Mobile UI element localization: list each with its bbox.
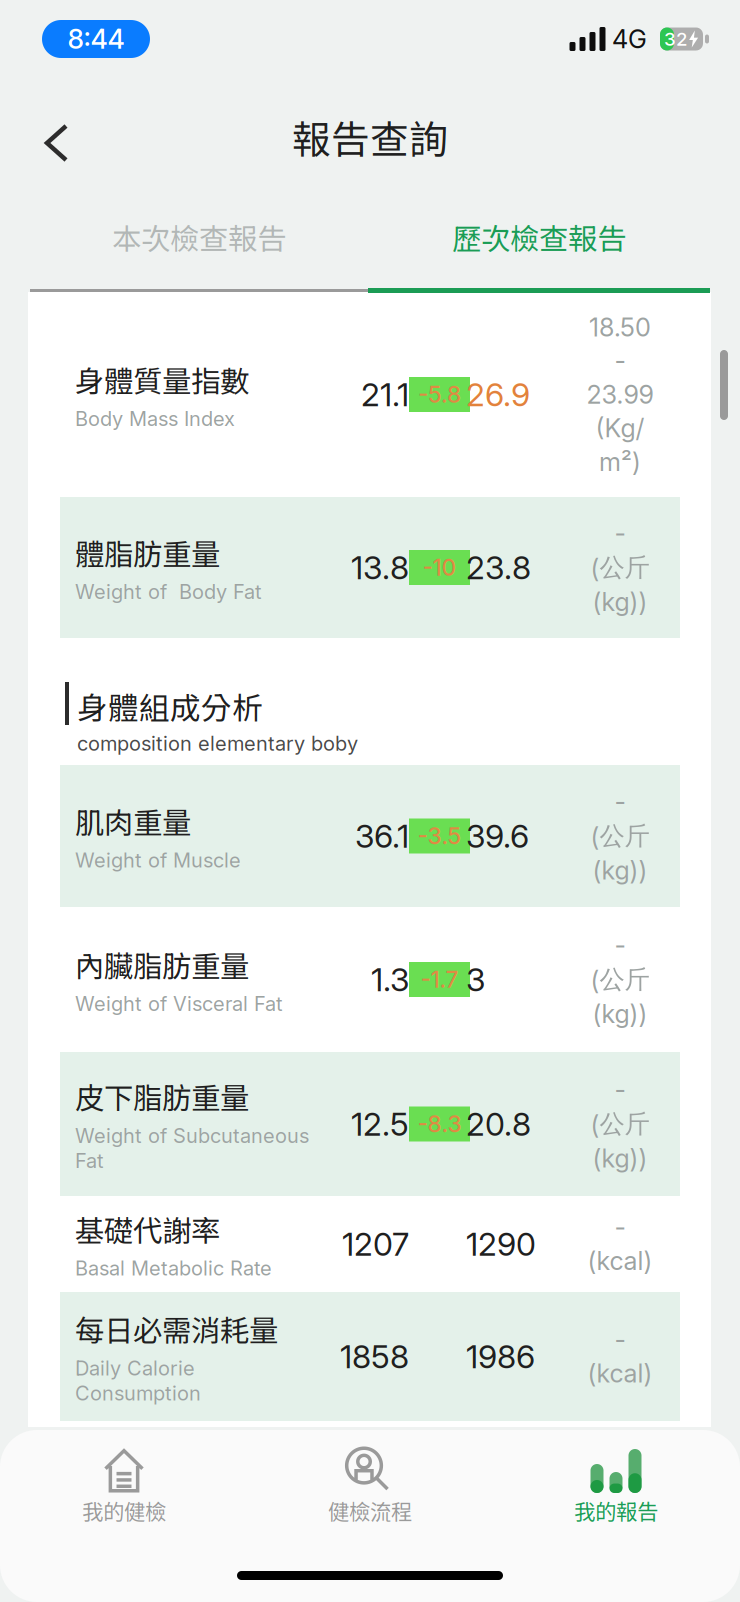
staticText: 1986 bbox=[466, 1337, 535, 1376]
button[interactable]: 歷次檢查報告 bbox=[368, 196, 710, 278]
staticText: Weight of Subcutaneous bbox=[75, 1123, 309, 1148]
staticText: (公斤 bbox=[590, 820, 649, 852]
staticText: 1207 bbox=[342, 1225, 409, 1263]
staticText: 36.1 bbox=[355, 817, 409, 855]
staticText: Weight of Muscle bbox=[75, 848, 241, 872]
button[interactable]: 我的報告 bbox=[493, 1448, 739, 1526]
staticText: 1.3 bbox=[371, 960, 409, 999]
staticText: (kg)) bbox=[592, 855, 647, 886]
button[interactable]: Back bbox=[0, 92, 96, 182]
staticText: 本次檢查報告 bbox=[112, 216, 286, 258]
staticText: 每日必需消耗量 bbox=[75, 1308, 278, 1350]
staticText: 20.8 bbox=[466, 1105, 531, 1143]
staticText: m²) bbox=[599, 446, 641, 477]
staticText: 皮下脂肪重量 bbox=[75, 1075, 249, 1118]
staticText: (kcal) bbox=[587, 1245, 652, 1276]
staticText: 歷次檢查報告 bbox=[452, 216, 626, 258]
staticText: 4G bbox=[612, 24, 647, 54]
staticText: 1290 bbox=[466, 1225, 536, 1263]
staticText: 身體質量指數 bbox=[75, 358, 249, 401]
staticText: 3 bbox=[466, 960, 485, 999]
staticText: - bbox=[614, 1212, 625, 1242]
staticText: 我的報告 bbox=[574, 1495, 658, 1526]
staticText: (公斤 bbox=[590, 963, 649, 995]
staticText: (公斤 bbox=[590, 551, 649, 583]
staticText: - bbox=[614, 345, 625, 376]
staticText: - bbox=[614, 786, 625, 817]
staticText: -5.8 bbox=[418, 381, 461, 408]
staticText: 內臟脂肪重量 bbox=[75, 943, 249, 986]
staticText: Consumption bbox=[75, 1381, 201, 1405]
staticText: -3.5 bbox=[417, 822, 461, 850]
staticText: Weight of Body Fat bbox=[75, 580, 262, 604]
staticText: - bbox=[614, 1074, 625, 1105]
staticText: (kg)) bbox=[592, 1143, 647, 1174]
staticText: 身體組成分析 bbox=[77, 684, 263, 728]
staticText: 報告查詢 bbox=[292, 109, 448, 165]
staticText: 23.99 bbox=[586, 379, 653, 410]
staticText: Body Mass Index bbox=[75, 407, 235, 431]
staticText: (kg)) bbox=[592, 586, 647, 617]
staticText: 8:44 bbox=[67, 23, 124, 55]
staticText: -8.3 bbox=[417, 1110, 461, 1138]
staticText: Daily Calorie bbox=[75, 1356, 195, 1380]
staticText: (kg)) bbox=[592, 998, 647, 1029]
staticText: 23.8 bbox=[466, 548, 531, 587]
staticText: - bbox=[614, 518, 625, 549]
staticText: 18.50 bbox=[589, 312, 651, 343]
staticText: 12.5 bbox=[351, 1105, 409, 1143]
staticText: -1.7 bbox=[420, 966, 458, 993]
staticText: 我的健檢 bbox=[82, 1495, 166, 1526]
staticText: Basal Metabolic Rate bbox=[75, 1256, 272, 1280]
staticText: Fat bbox=[75, 1149, 104, 1173]
staticText: Weight of Visceral Fat bbox=[75, 992, 283, 1016]
staticText: 21.1 bbox=[361, 375, 409, 414]
staticText: composition elementary boby bbox=[77, 731, 358, 756]
staticText: - bbox=[614, 930, 625, 961]
staticText: 39.6 bbox=[466, 817, 529, 855]
staticText: 肌肉重量 bbox=[75, 800, 191, 842]
staticText: (公斤 bbox=[590, 1108, 649, 1140]
button[interactable]: 本次檢查報告 bbox=[30, 196, 368, 278]
staticText: -10 bbox=[422, 554, 456, 581]
staticText: 32 bbox=[664, 28, 688, 50]
staticText: 1858 bbox=[340, 1337, 409, 1376]
button[interactable]: 我的健檢 bbox=[1, 1448, 247, 1526]
staticText: 基礎代謝率 bbox=[75, 1208, 220, 1250]
staticText: 13.8 bbox=[351, 548, 409, 587]
button[interactable]: 健檢流程 bbox=[247, 1448, 493, 1526]
staticText: (Kg/ bbox=[595, 413, 644, 443]
staticText: 體脂肪重量 bbox=[75, 531, 220, 574]
staticText: (kcal) bbox=[587, 1358, 652, 1389]
staticText: 健檢流程 bbox=[328, 1495, 412, 1526]
staticText: - bbox=[614, 1324, 625, 1355]
staticText: 26.9 bbox=[466, 375, 530, 414]
